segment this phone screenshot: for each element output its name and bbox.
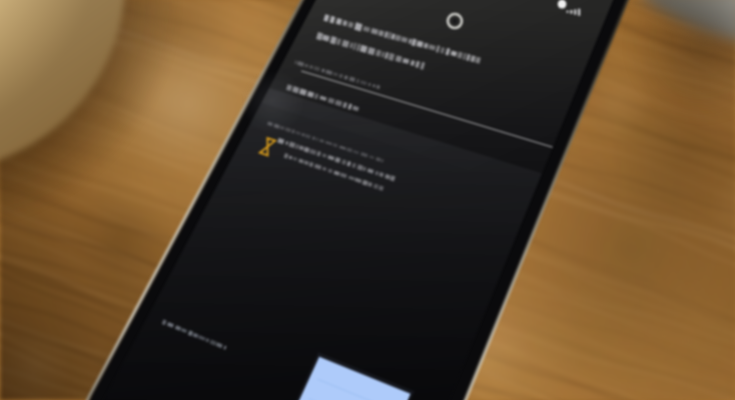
- other: Phone on wooden desk: [0, 0, 735, 400]
